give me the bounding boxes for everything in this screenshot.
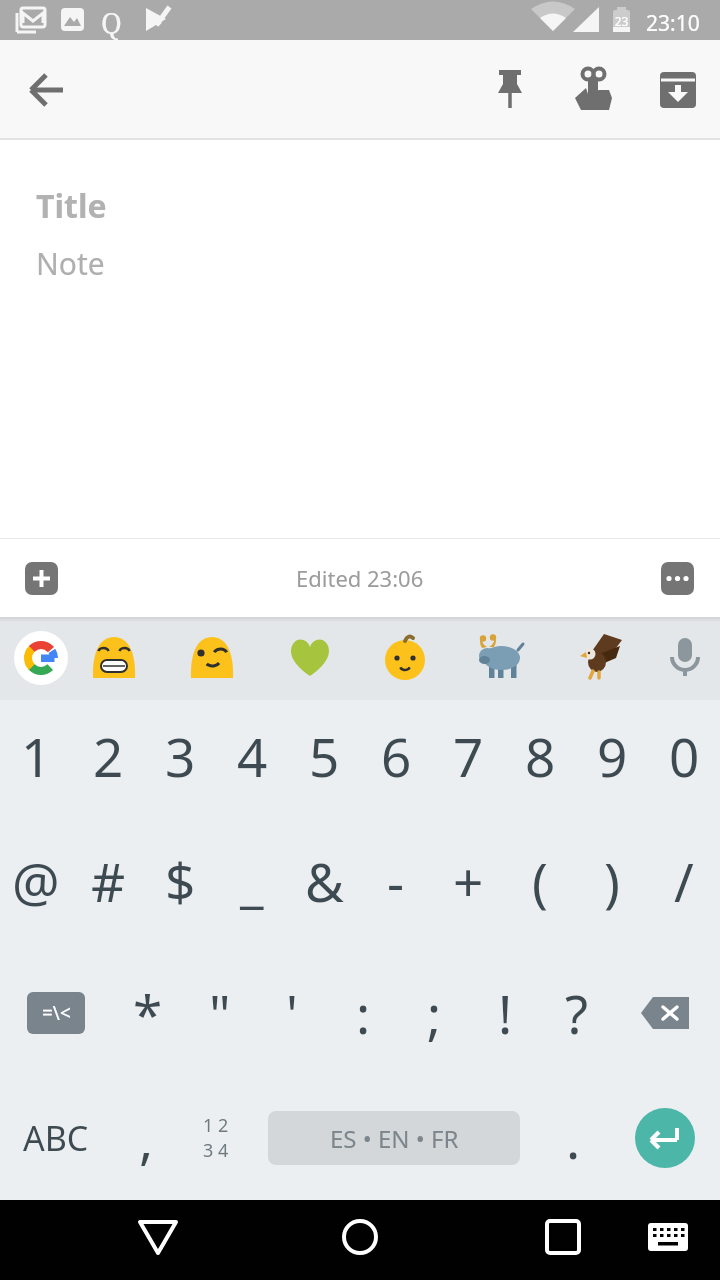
button[interactable] [188,634,236,682]
button[interactable]: * [112,950,184,1075]
staticText: ES • EN • FR [330,1122,459,1155]
button[interactable]: ( [504,825,576,950]
button[interactable] [635,1108,695,1168]
staticText: * [133,977,163,1049]
staticText: Q [101,3,122,41]
button[interactable] [336,1213,384,1261]
staticText: _ [240,845,264,917]
button[interactable]: $ [144,825,216,950]
staticText: Note [36,243,105,284]
button[interactable]: ABC [0,1075,112,1200]
staticText: 1 [21,720,52,792]
button[interactable] [478,634,526,682]
staticText: . [566,1102,581,1174]
button[interactable]: 2 [72,700,144,825]
staticText: 4 [237,720,268,792]
staticText: 7 [453,720,484,792]
staticText: ! [498,977,513,1049]
button[interactable] [654,554,702,602]
button[interactable]: _ [216,825,288,950]
staticText: 5 [309,720,340,792]
staticText: 3 4 [203,1138,229,1163]
staticText: Title [36,184,107,228]
button[interactable] [134,1213,182,1261]
button[interactable]: ) [576,825,648,950]
staticText: 8 [525,720,556,792]
button[interactable] [654,66,702,114]
staticText: ) [604,845,620,917]
staticText: ; [427,977,442,1049]
button[interactable] [576,634,624,682]
button[interactable]: ! [470,950,541,1075]
button[interactable]: 8 [504,700,576,825]
button[interactable]: =\< [0,950,112,1075]
button[interactable]: , [112,1075,180,1200]
button[interactable]: + [432,825,504,950]
button[interactable]: # [72,825,144,950]
staticText: =\< [42,1000,71,1026]
button[interactable]: 1 2 [180,1075,252,1200]
staticText: ( [532,845,548,917]
button[interactable]: 7 [432,700,504,825]
staticText: Edited 23:06 [296,563,424,593]
button[interactable]: 5 [288,700,360,825]
staticText: : [356,977,371,1049]
button[interactable]: : [328,950,399,1075]
staticText: 2 [93,720,124,792]
button[interactable] [381,634,429,682]
staticText: @ [12,845,60,917]
staticText: 9 [597,720,628,792]
button[interactable]: ? [541,950,612,1075]
button[interactable]: / [648,825,720,950]
button[interactable]: & [288,825,360,950]
button[interactable]: 9 [576,700,648,825]
staticText: ABC [23,1115,89,1161]
button[interactable] [18,554,66,602]
button[interactable]: ' [256,950,328,1075]
staticText: / [674,845,694,917]
button[interactable] [569,66,617,114]
button[interactable] [644,1213,692,1261]
button[interactable] [486,66,534,114]
staticText: # [91,845,126,917]
button[interactable]: " [184,950,256,1075]
button[interactable] [539,1213,587,1261]
staticText: " [209,977,231,1049]
button[interactable]: 4 [216,700,288,825]
staticText: 0 [669,720,700,792]
button[interactable]: 3 [144,700,216,825]
button[interactable] [25,66,73,114]
button[interactable] [286,634,334,682]
button[interactable]: ES • EN • FR [268,1111,520,1165]
button[interactable]: @ [0,825,72,950]
button[interactable] [90,634,138,682]
button[interactable]: ; [399,950,470,1075]
staticText: 23 [613,13,630,29]
button[interactable]: 0 [648,700,720,825]
button[interactable] [14,631,68,685]
staticText: ' [286,977,298,1049]
staticText: 3 [165,720,196,792]
staticText: 1 2 [203,1113,229,1138]
button[interactable]: - [360,825,432,950]
staticText: 6 [381,720,412,792]
staticText: & [305,845,344,917]
button[interactable]: . [536,1075,610,1200]
button[interactable]: 6 [360,700,432,825]
staticText: $ [165,845,196,917]
button[interactable]: 1 [0,700,72,825]
staticText: + [453,845,484,917]
button[interactable] [612,950,720,1075]
button[interactable] [663,636,707,680]
staticText: ? [565,977,589,1049]
staticText: - [387,845,405,917]
staticText: 23:10 [646,9,700,38]
staticText: , [139,1102,154,1174]
